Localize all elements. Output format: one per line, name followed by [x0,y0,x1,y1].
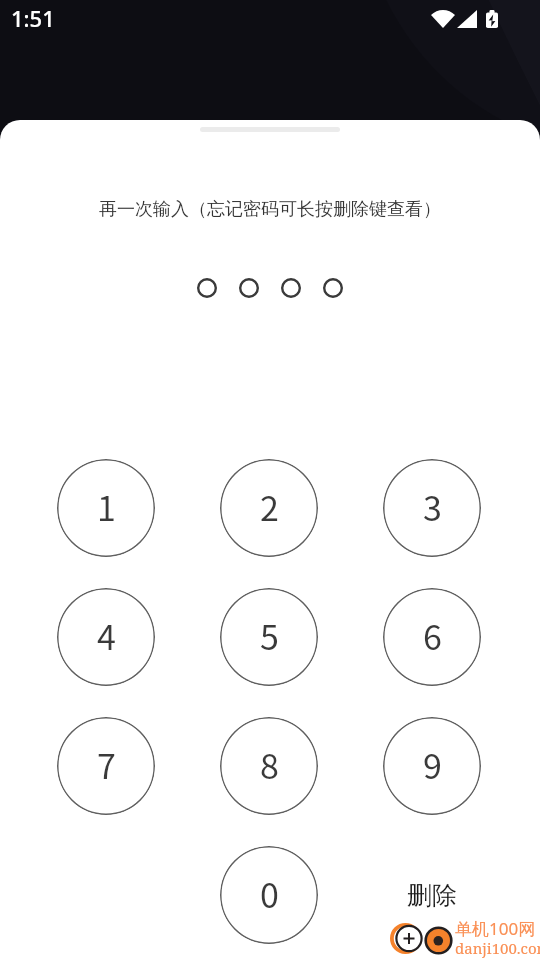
button[interactable]: 2 [220,459,318,557]
staticText: 5 [260,611,279,660]
staticText: 1:51 [11,3,55,33]
button[interactable]: 9 [383,717,481,815]
staticText: danji100.com [455,938,540,958]
staticText: 2 [260,482,279,531]
staticText: 再一次输入（忘记密码可长按删除键查看） [99,198,441,221]
staticText: 1 [97,482,116,531]
button[interactable]: 0 [220,846,318,944]
staticText: 7 [97,740,116,789]
staticText: 8 [260,740,279,789]
staticText: 3 [423,482,442,531]
staticText: 0 [260,869,279,918]
button[interactable]: 4 [57,588,155,686]
staticText: 删除 [407,880,457,911]
staticText: 单机100网 [455,917,536,940]
button[interactable]: 8 [220,717,318,815]
button[interactable]: 7 [57,717,155,815]
button[interactable]: 删除 [383,846,481,944]
staticText: 4 [97,611,116,660]
button[interactable]: 6 [383,588,481,686]
button[interactable]: 5 [220,588,318,686]
staticText: 9 [423,740,442,789]
staticText: 6 [423,611,442,660]
button[interactable]: 3 [383,459,481,557]
button[interactable]: 1 [57,459,155,557]
